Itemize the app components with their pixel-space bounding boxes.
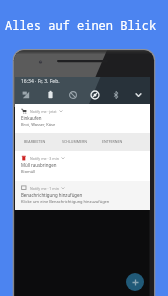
staticText: BEARBEITEN — [24, 139, 46, 144]
staticText: Klicke um eine Benachrichtigung hinzuzuf… — [21, 199, 110, 204]
button[interactable]: Notify me · jetzt — [15, 104, 150, 133]
button[interactable]: Signal — [15, 77, 37, 104]
button[interactable]: Notify me · 3 min — [15, 151, 150, 181]
button[interactable]: Battery — [37, 77, 59, 104]
staticText: SCHLUMMERN — [62, 139, 87, 144]
button[interactable]: Expand — [127, 77, 150, 104]
button[interactable]: BEARBEITEN — [21, 136, 49, 147]
staticText: Müll rausbringen — [21, 162, 57, 168]
button[interactable]: Bluetooth — [104, 77, 127, 104]
staticText: Notify me · 3 min — [30, 156, 59, 161]
button[interactable]: Add notification — [126, 273, 144, 291]
button[interactable]: SCHLUMMERN — [59, 136, 90, 147]
staticText: Biomüll — [21, 169, 36, 174]
staticText: Notify me · jetzt — [30, 109, 57, 114]
button[interactable]: Auto rotate — [81, 77, 104, 104]
button[interactable]: Do not disturb — [59, 77, 81, 104]
staticText: Notify me · 1 min — [30, 186, 59, 191]
staticText: Einkaufen — [21, 115, 42, 121]
staticText: Alles auf einen Blick — [5, 17, 157, 33]
staticText: Benachrichtigung hinzufügen — [21, 192, 83, 198]
staticText: Brot, Wasser, Käse — [21, 122, 56, 127]
button[interactable]: ENTFERNEN — [99, 136, 126, 147]
staticText: ENTFERNEN — [102, 139, 123, 144]
button[interactable]: Notify me · 1 min — [15, 181, 150, 210]
staticText: 16:34 · Fr, 3. Feb. — [21, 78, 60, 85]
